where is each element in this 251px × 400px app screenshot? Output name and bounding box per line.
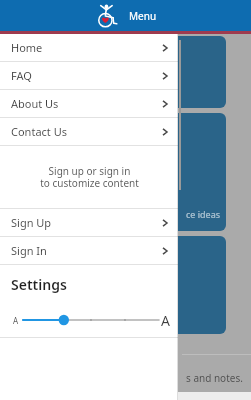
staticText: Home — [11, 40, 43, 55]
button[interactable]: Home logo — [95, 3, 121, 29]
staticText: Sign In — [11, 243, 47, 258]
button[interactable]: Sign In — [0, 237, 178, 264]
button[interactable]: About Us — [0, 90, 178, 117]
staticText: Contact Us — [11, 124, 67, 139]
staticText: Sign Up — [11, 215, 52, 230]
staticText: A — [161, 311, 170, 330]
staticText: ce ideas — [186, 208, 221, 220]
staticText: Settings — [11, 275, 67, 294]
button[interactable]: FAQ — [0, 62, 178, 89]
button[interactable] — [140, 36, 226, 108]
button[interactable]: otes — [140, 236, 226, 334]
button[interactable]: y ideas — [140, 113, 226, 231]
staticText: Sign up or sign in to customize content — [40, 164, 139, 190]
staticText: Menu — [129, 9, 157, 23]
staticText: A — [13, 315, 19, 326]
staticText: FAQ — [11, 68, 32, 83]
button[interactable]: Home — [0, 34, 178, 61]
button[interactable]: Contact Us — [0, 118, 178, 145]
staticText: About Us — [11, 96, 59, 111]
button[interactable]: Sign Up — [0, 209, 178, 236]
staticText: s and notes. — [186, 371, 243, 385]
button[interactable]: A — [0, 303, 178, 337]
